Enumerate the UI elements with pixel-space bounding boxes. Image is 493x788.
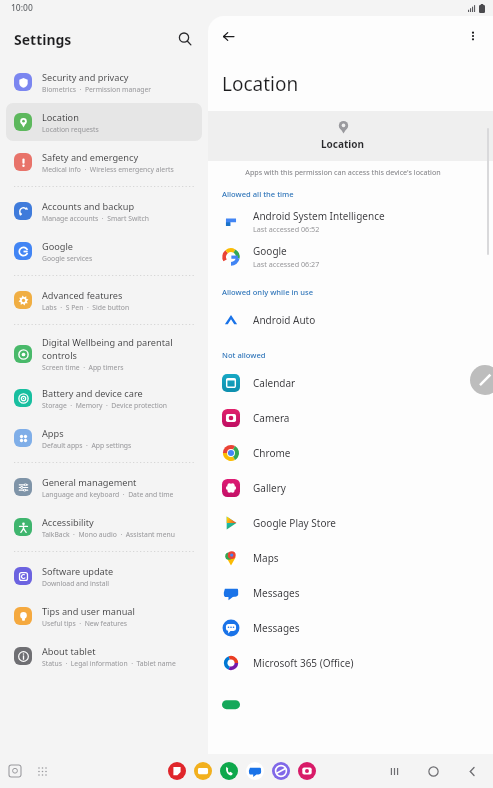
staticText: Google [42,240,74,253]
button[interactable]: dockcam [298,762,316,780]
button[interactable]: General management [6,468,202,506]
staticText: Last accessed 06:27 [253,259,320,269]
button[interactable]: Back [459,758,485,784]
button[interactable]: Recent apps [381,758,407,784]
staticText: Camera [253,411,290,425]
button[interactable]: samsungint [272,762,290,780]
button[interactable]: phone [220,762,238,780]
staticText: Google [253,244,287,258]
button[interactable]: Tips and user manual [6,597,202,635]
staticText: Safety and emergency [42,151,139,164]
button[interactable]: Location [6,103,202,141]
button[interactable]: Digital Wellbeing and parental [6,330,202,377]
button[interactable]: Search [172,26,198,52]
button[interactable]: Advanced features [6,281,202,319]
button[interactable]: Accounts and backup [6,192,202,230]
staticText: Gallery [253,481,286,495]
staticText: Storage · Memory · Device protection [42,401,168,410]
staticText: Google Play Store [253,516,337,530]
button[interactable]: Gallery [208,470,493,505]
staticText: Location requests [42,125,99,134]
button[interactable]: Google [208,239,493,274]
button[interactable]: Google [6,232,202,270]
button[interactable]: Edit [470,365,493,395]
staticText: Maps [253,551,279,565]
button[interactable]: dockmsg [246,762,264,780]
staticText: Battery and device care [42,387,143,400]
staticText: Download and install [42,579,110,588]
staticText: General management [42,476,137,489]
button[interactable]: Battery and device care [6,379,202,417]
button[interactable]: keep [168,762,186,780]
button[interactable]: About tablet [6,637,202,675]
staticText: Location [222,71,299,97]
staticText: Messages [253,586,300,600]
button[interactable]: Software update [6,557,202,595]
button[interactable]: Microsoft 365 (Office) [208,645,493,680]
button[interactable]: More options [461,24,485,48]
button[interactable]: Messages [208,610,493,645]
staticText: Chrome [253,446,291,460]
staticText: Apps [42,427,64,440]
staticText: Software update [42,565,114,578]
staticText: Accounts and backup [42,200,135,213]
staticText: Tips and user manual [42,605,135,618]
staticText: Manage accounts · Smart Switch [42,214,149,223]
button[interactable]: Maps [208,540,493,575]
staticText: Status · Legal information · Tablet name [42,659,176,668]
button[interactable]: All apps [31,760,53,782]
button[interactable]: Apps [6,419,202,457]
staticText: Not allowed [222,350,266,360]
staticText: controls [42,349,77,362]
staticText: Medical info · Wireless emergency alerts [42,165,174,174]
staticText: Labs · S Pen · Side button [42,303,130,312]
staticText: Accessibility [42,516,94,529]
staticText: Security and privacy [42,71,129,84]
staticText: Last accessed 06:52 [253,224,320,234]
button[interactable]: Chrome [208,435,493,470]
staticText: Messages [253,621,300,635]
button[interactable]: Recents [4,760,26,782]
button[interactable]: Safety and emergency [6,143,202,181]
button[interactable]: Accessibility [6,508,202,546]
staticText: Location [42,111,79,124]
button[interactable]: Camera [208,400,493,435]
button[interactable] [208,680,493,715]
staticText: Apps with this permission can access thi… [245,167,441,177]
staticText: Allowed only while in use [222,287,314,297]
button[interactable]: Google Play Store [208,505,493,540]
button[interactable]: Android Auto [208,302,493,337]
staticText: Android Auto [253,313,316,327]
staticText: Language and keyboard · Date and time [42,490,174,499]
staticText: Digital Wellbeing and parental [42,336,173,349]
staticText: 10:00 [11,2,33,14]
staticText: Microsoft 365 (Office) [253,656,354,670]
button[interactable]: Back [216,24,240,48]
button[interactable]: Calendar [208,365,493,400]
button[interactable]: Home [420,758,446,784]
staticText: Android System Intelligence [253,209,385,223]
staticText: About tablet [42,645,96,658]
staticText: Advanced features [42,289,123,302]
button[interactable]: Security and privacy [6,63,202,101]
staticText: Biometrics · Permission manager [42,85,152,94]
staticText: Location [321,137,365,151]
staticText: Settings [14,30,72,49]
staticText: TalkBack · Mono audio · Assistant menu [42,530,175,539]
staticText: Google services [42,254,93,263]
staticText: Useful tips · New features [42,619,128,628]
button[interactable]: Messages [208,575,493,610]
staticText: Allowed all the time [222,189,294,199]
staticText: Default apps · App settings [42,441,132,450]
button[interactable]: Android System Intelligence [208,204,493,239]
staticText: Screen time · App timers [42,363,124,372]
staticText: Calendar [253,376,296,390]
button[interactable]: files [194,762,212,780]
